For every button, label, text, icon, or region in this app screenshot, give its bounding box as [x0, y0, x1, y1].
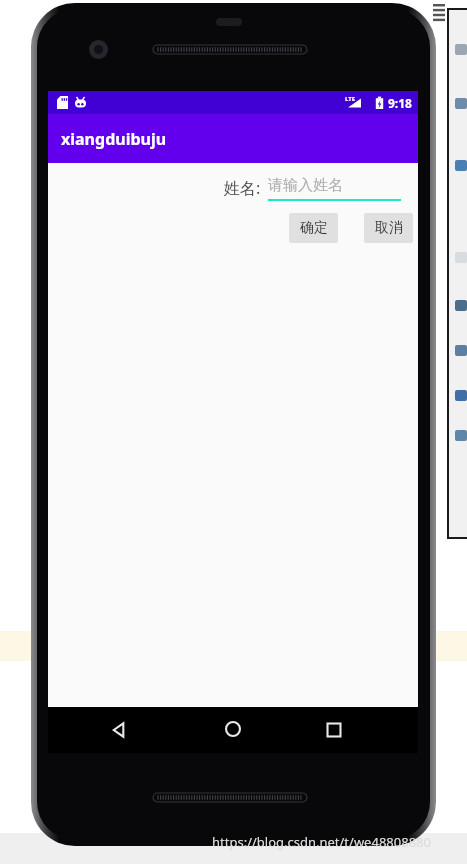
button[interactable]: Back	[107, 718, 131, 742]
staticText: LTE	[345, 95, 356, 103]
button[interactable]: 请输入姓名	[268, 174, 401, 201]
button[interactable]: Home	[221, 717, 245, 741]
button[interactable]: 取消	[364, 213, 413, 243]
staticText: 9:18	[388, 95, 412, 111]
staticText: https://blog.csdn.net/t/we48808880	[212, 833, 431, 851]
staticText: 请输入姓名	[268, 176, 343, 195]
staticText: 取消	[375, 219, 403, 237]
staticText: 确定	[300, 219, 328, 237]
button[interactable]: 确定	[289, 213, 338, 243]
staticText: xiangduibuju	[61, 128, 167, 150]
staticText: 姓名:	[224, 177, 261, 199]
button[interactable]: Recent apps	[322, 718, 346, 742]
